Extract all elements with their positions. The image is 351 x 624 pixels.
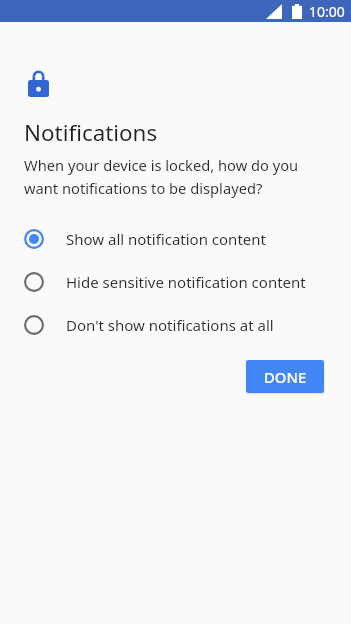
button[interactable]: DONE <box>246 360 324 393</box>
other: Mobile signal full <box>266 4 282 19</box>
staticText: DONE <box>264 367 307 387</box>
staticText: Don't show notifications at all <box>66 315 274 335</box>
other: Device lock <box>28 71 49 97</box>
staticText: Hide sensitive notification content <box>66 272 306 292</box>
staticText: Show all notification content <box>66 229 266 249</box>
other: Battery full <box>292 4 302 19</box>
staticText: When your device is locked, how do you w… <box>24 155 315 198</box>
staticText: Notifications <box>24 117 158 148</box>
button[interactable]: Hide sensitive notification content <box>0 260 351 303</box>
button[interactable]: Don't show notifications at all <box>0 303 351 346</box>
staticText: 10:00 <box>309 2 345 21</box>
button[interactable]: Show all notification content <box>0 217 351 260</box>
